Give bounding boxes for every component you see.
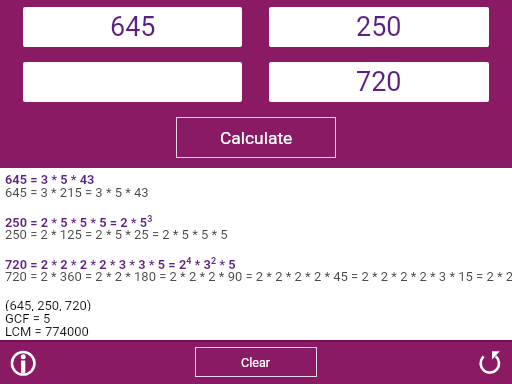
staticText: 645 = 3 * 5 * 43 [5,172,95,185]
button[interactable] [23,62,242,102]
staticText: GCF = 5 [5,311,51,324]
button[interactable]: Calculate [176,117,336,158]
staticText: 720 = 2 * 2 * 2 * 2 * 3 * 3 * 5 = 24 * 3… [5,256,236,269]
staticText: 250 = 2 * 5 * 5 * 5 = 2 * 53 [5,214,153,227]
staticText: 250 = 2 * 125 = 2 * 5 * 25 = 2 * 5 * 5 *… [5,227,228,240]
button[interactable]: 250 [269,7,489,47]
button[interactable]: 720 [269,62,489,102]
button[interactable]: Info [4,344,40,380]
staticText: 250 [356,11,402,43]
button[interactable]: 645 [23,7,242,47]
button[interactable]: Clear [195,347,317,377]
staticText: (645, 250, 720) [5,298,92,311]
staticText: Clear [241,355,271,370]
staticText: LCM = 774000 [5,324,89,337]
staticText: Calculate [220,128,293,148]
staticText: 645 [110,11,156,43]
staticText: 720 = 2 * 360 = 2 * 2 * 180 = 2 * 2 * 2 … [5,269,512,282]
staticText: 720 [356,66,402,98]
staticText: 645 = 3 * 215 = 3 * 5 * 43 [5,185,149,198]
button[interactable]: Reset [472,344,508,380]
